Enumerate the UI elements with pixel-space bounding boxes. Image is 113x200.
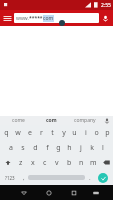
staticText: c: [43, 158, 47, 168]
button[interactable]: d: [29, 140, 41, 155]
button[interactable]: n: [75, 155, 87, 170]
button[interactable]: x: [27, 155, 39, 170]
button[interactable]: Home: [36, 185, 61, 200]
staticText: i: [85, 128, 87, 138]
staticText: www.: [16, 15, 29, 22]
button[interactable]: i: [80, 125, 91, 140]
button[interactable]: Menu: [2, 13, 13, 24]
staticText: d: [33, 143, 38, 153]
staticText: n: [79, 158, 84, 168]
button[interactable]: company: [67, 116, 102, 125]
button[interactable]: u: [69, 125, 80, 140]
button[interactable]: ,: [19, 170, 28, 185]
staticText: s: [21, 143, 25, 153]
button[interactable]: f: [41, 140, 53, 155]
staticText: o: [94, 128, 99, 138]
staticText: q: [4, 128, 9, 138]
staticText: v: [55, 158, 59, 168]
button[interactable]: e: [24, 125, 36, 140]
staticText: f: [46, 143, 49, 153]
button[interactable]: m: [87, 155, 99, 170]
staticText: z: [19, 158, 23, 168]
staticText: j: [80, 143, 82, 153]
staticText: 2:55: [101, 2, 111, 9]
button[interactable]: j: [75, 140, 86, 155]
button[interactable]: p: [102, 125, 113, 140]
button[interactable]: ?123: [1, 170, 19, 185]
staticText: e: [28, 128, 32, 138]
button[interactable]: l: [97, 140, 108, 155]
button[interactable]: Voice search: [100, 13, 111, 24]
button[interactable]: com: [35, 116, 67, 125]
button[interactable]: Back: [11, 185, 36, 200]
button[interactable]: q: [0, 125, 12, 140]
button[interactable]: Voice input: [102, 116, 111, 125]
button[interactable]: [28, 170, 85, 185]
staticText: b: [67, 158, 72, 168]
staticText: ?123: [5, 175, 15, 181]
staticText: l: [102, 143, 104, 153]
staticText: com: [43, 15, 54, 22]
button[interactable]: s: [17, 140, 29, 155]
button[interactable]: Backspace: [99, 155, 113, 170]
button[interactable]: t: [47, 125, 58, 140]
button[interactable]: y: [58, 125, 69, 140]
staticText: x: [31, 158, 35, 168]
button[interactable]: w: [12, 125, 24, 140]
staticText: y: [62, 128, 66, 138]
button[interactable]: r: [36, 125, 47, 140]
staticText: company: [74, 117, 96, 124]
staticText: come: [12, 117, 25, 124]
button[interactable]: Enter: [94, 170, 112, 185]
staticText: r: [40, 128, 43, 138]
button[interactable]: z: [15, 155, 27, 170]
staticText: g: [56, 143, 61, 153]
button[interactable]: c: [39, 155, 51, 170]
staticText: m: [90, 158, 97, 168]
button[interactable]: g: [53, 140, 64, 155]
staticText: w: [15, 128, 21, 138]
staticText: com: [46, 117, 57, 124]
button[interactable]: Shift: [0, 155, 15, 170]
staticText: k: [90, 143, 94, 153]
button[interactable]: Switch keyboard: [86, 185, 106, 200]
button[interactable]: h: [64, 140, 75, 155]
staticText: *****: [29, 15, 43, 22]
button[interactable]: k: [86, 140, 97, 155]
button[interactable]: www.: [14, 13, 99, 23]
button[interactable]: o: [91, 125, 102, 140]
staticText: u: [72, 128, 77, 138]
staticText: p: [105, 128, 110, 138]
staticText: ,: [23, 174, 25, 182]
staticText: t: [51, 128, 54, 138]
button[interactable]: a: [5, 140, 17, 155]
staticText: a: [9, 143, 13, 153]
button[interactable]: b: [63, 155, 75, 170]
button[interactable]: come: [2, 116, 35, 125]
staticText: h: [67, 143, 72, 153]
button[interactable]: .: [85, 170, 94, 185]
staticText: .: [89, 174, 91, 182]
button[interactable]: v: [51, 155, 63, 170]
button[interactable]: Recents: [61, 185, 86, 200]
